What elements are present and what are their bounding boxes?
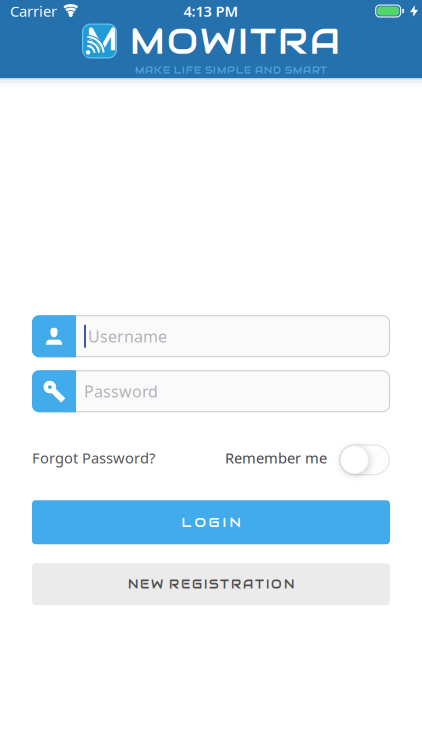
staticText: L O G I N (181, 514, 240, 531)
button[interactable]: L O G I N (32, 500, 390, 544)
staticText: M O W I T R A (130, 18, 340, 64)
staticText: M A K E L I F E S I M P L E A N D S M A … (135, 64, 327, 76)
staticText: Forgot Password? (32, 448, 155, 467)
button[interactable]: Remember me (339, 444, 390, 475)
button[interactable]: Forgot Password? (32, 450, 155, 469)
staticText: Remember me (225, 448, 327, 467)
staticText: Username (88, 326, 167, 347)
button[interactable]: Username (32, 315, 390, 357)
staticText: N E W R E G I S T R A T I O N (128, 576, 294, 592)
staticText: 4:13 PM (183, 1, 238, 21)
button[interactable]: Password (32, 370, 390, 412)
staticText: Carrier (10, 1, 57, 21)
staticText: M (86, 19, 117, 59)
staticText: Password (84, 381, 158, 402)
button[interactable]: N E W R E G I S T R A T I O N (32, 563, 390, 605)
